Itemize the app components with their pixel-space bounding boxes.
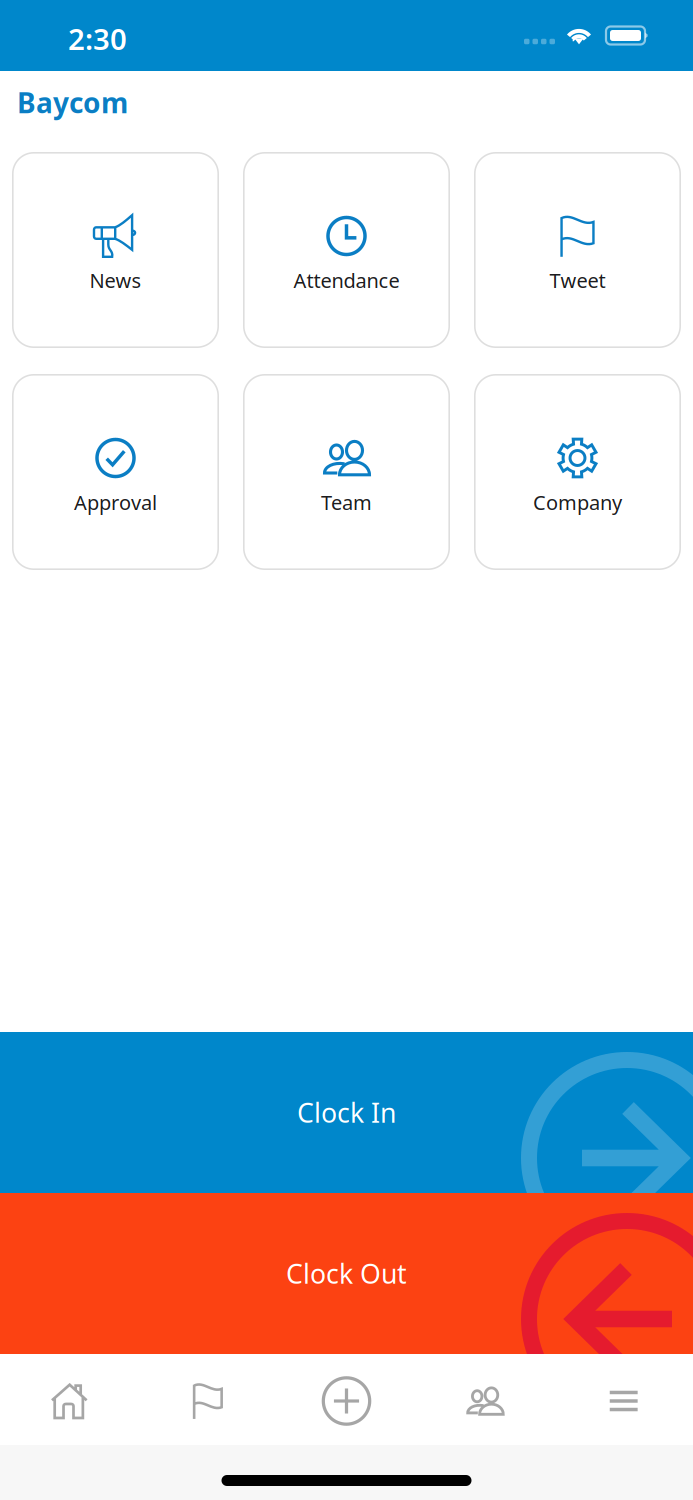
button[interactable]: Team <box>416 1382 554 1420</box>
button[interactable]: Reports <box>139 1376 277 1426</box>
button[interactable]: Company <box>474 374 681 570</box>
staticText: Approval <box>74 489 157 516</box>
button[interactable]: News <box>12 152 219 348</box>
button[interactable]: Add <box>277 1375 416 1427</box>
button[interactable]: Clock In <box>0 1032 693 1193</box>
button[interactable]: Home <box>0 1380 139 1422</box>
staticText: Company <box>533 489 622 516</box>
button[interactable]: Tweet <box>474 152 681 348</box>
staticText: Team <box>321 489 372 516</box>
staticText: 2:30 <box>68 19 127 58</box>
staticText: Clock In <box>297 1095 396 1130</box>
staticText: News <box>89 267 141 294</box>
staticText: Attendance <box>293 267 399 294</box>
button[interactable]: Menu <box>554 1385 693 1416</box>
staticText: Clock Out <box>286 1256 407 1291</box>
button[interactable]: Attendance <box>243 152 450 348</box>
staticText: Tweet <box>549 267 605 294</box>
button[interactable]: Clock Out <box>0 1193 693 1354</box>
staticText: Baycom <box>17 84 128 121</box>
button[interactable]: Approval <box>12 374 219 570</box>
button[interactable]: Team <box>243 374 450 570</box>
